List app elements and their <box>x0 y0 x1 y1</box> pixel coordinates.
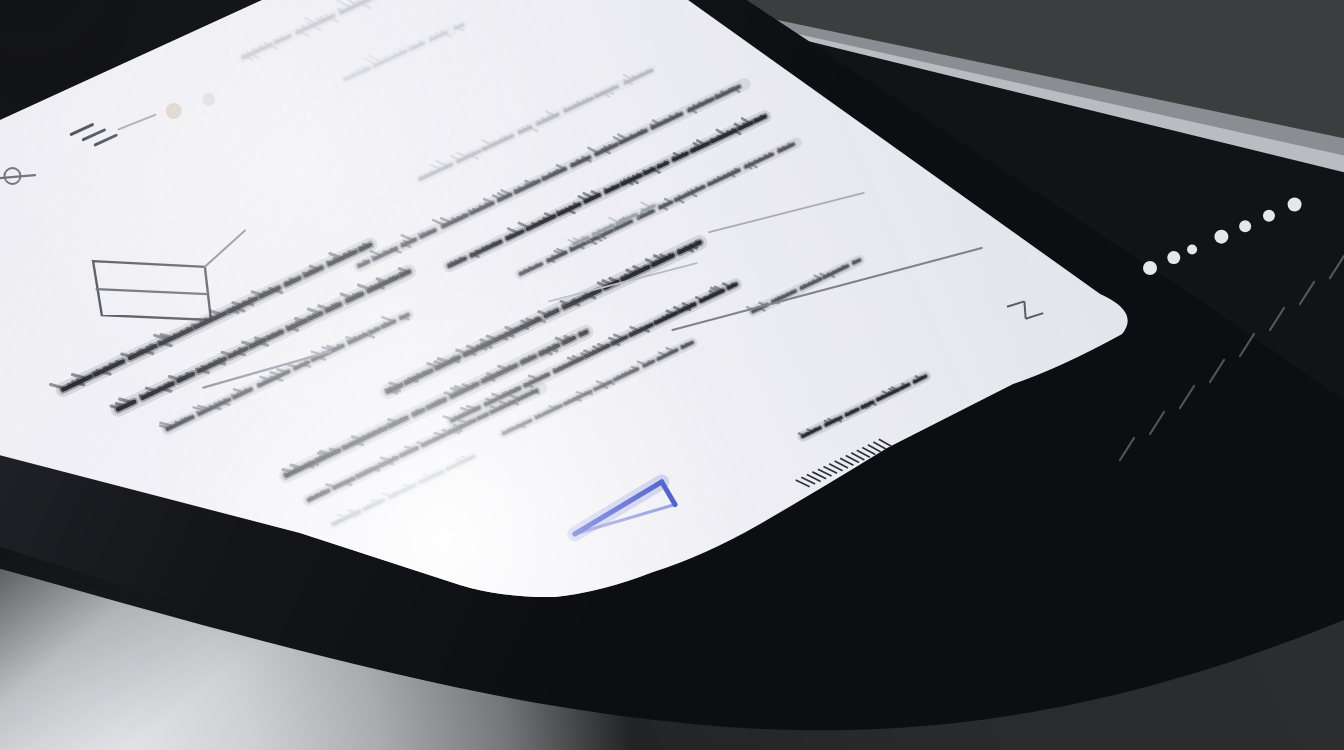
button[interactable]: Android phone on a desk <box>0 0 1344 750</box>
